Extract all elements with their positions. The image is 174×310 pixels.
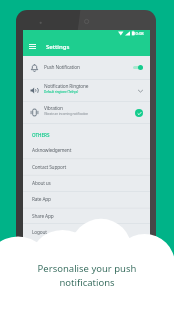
staticText: Acknowledgement bbox=[32, 147, 72, 154]
button[interactable]: Share App bbox=[23, 208, 150, 224]
staticText: Logout bbox=[32, 229, 47, 236]
staticText: About us bbox=[32, 180, 51, 187]
staticText: Rate App bbox=[32, 196, 51, 203]
staticText: Vibration bbox=[44, 105, 63, 112]
button[interactable]: Acknowledgement bbox=[23, 142, 150, 158]
button[interactable]: Rate App bbox=[23, 191, 150, 207]
button[interactable]: Notification Ringtone bbox=[23, 80, 150, 101]
staticText: Settings bbox=[46, 43, 70, 51]
button[interactable]: Logout bbox=[23, 224, 150, 240]
staticText: 10:08 bbox=[133, 31, 144, 37]
button[interactable]: Open navigation menu bbox=[27, 41, 38, 52]
staticText: Share App bbox=[32, 213, 54, 220]
button[interactable]: About us bbox=[23, 175, 150, 191]
staticText: OTHERS bbox=[32, 132, 50, 138]
staticText: Contact Support bbox=[32, 164, 67, 171]
button[interactable]: Push Notification bbox=[23, 56, 150, 79]
staticText: Push Notification bbox=[44, 64, 80, 71]
staticText: Default ringtone (Tethys) bbox=[44, 90, 79, 94]
button[interactable]: Vibration bbox=[23, 102, 150, 123]
staticText: Personalise your push notifications bbox=[0, 262, 174, 288]
staticText: Vibrate an incoming notification bbox=[44, 112, 89, 116]
button[interactable]: Contact Support bbox=[23, 159, 150, 175]
staticText: Notification Ringtone bbox=[44, 83, 89, 90]
